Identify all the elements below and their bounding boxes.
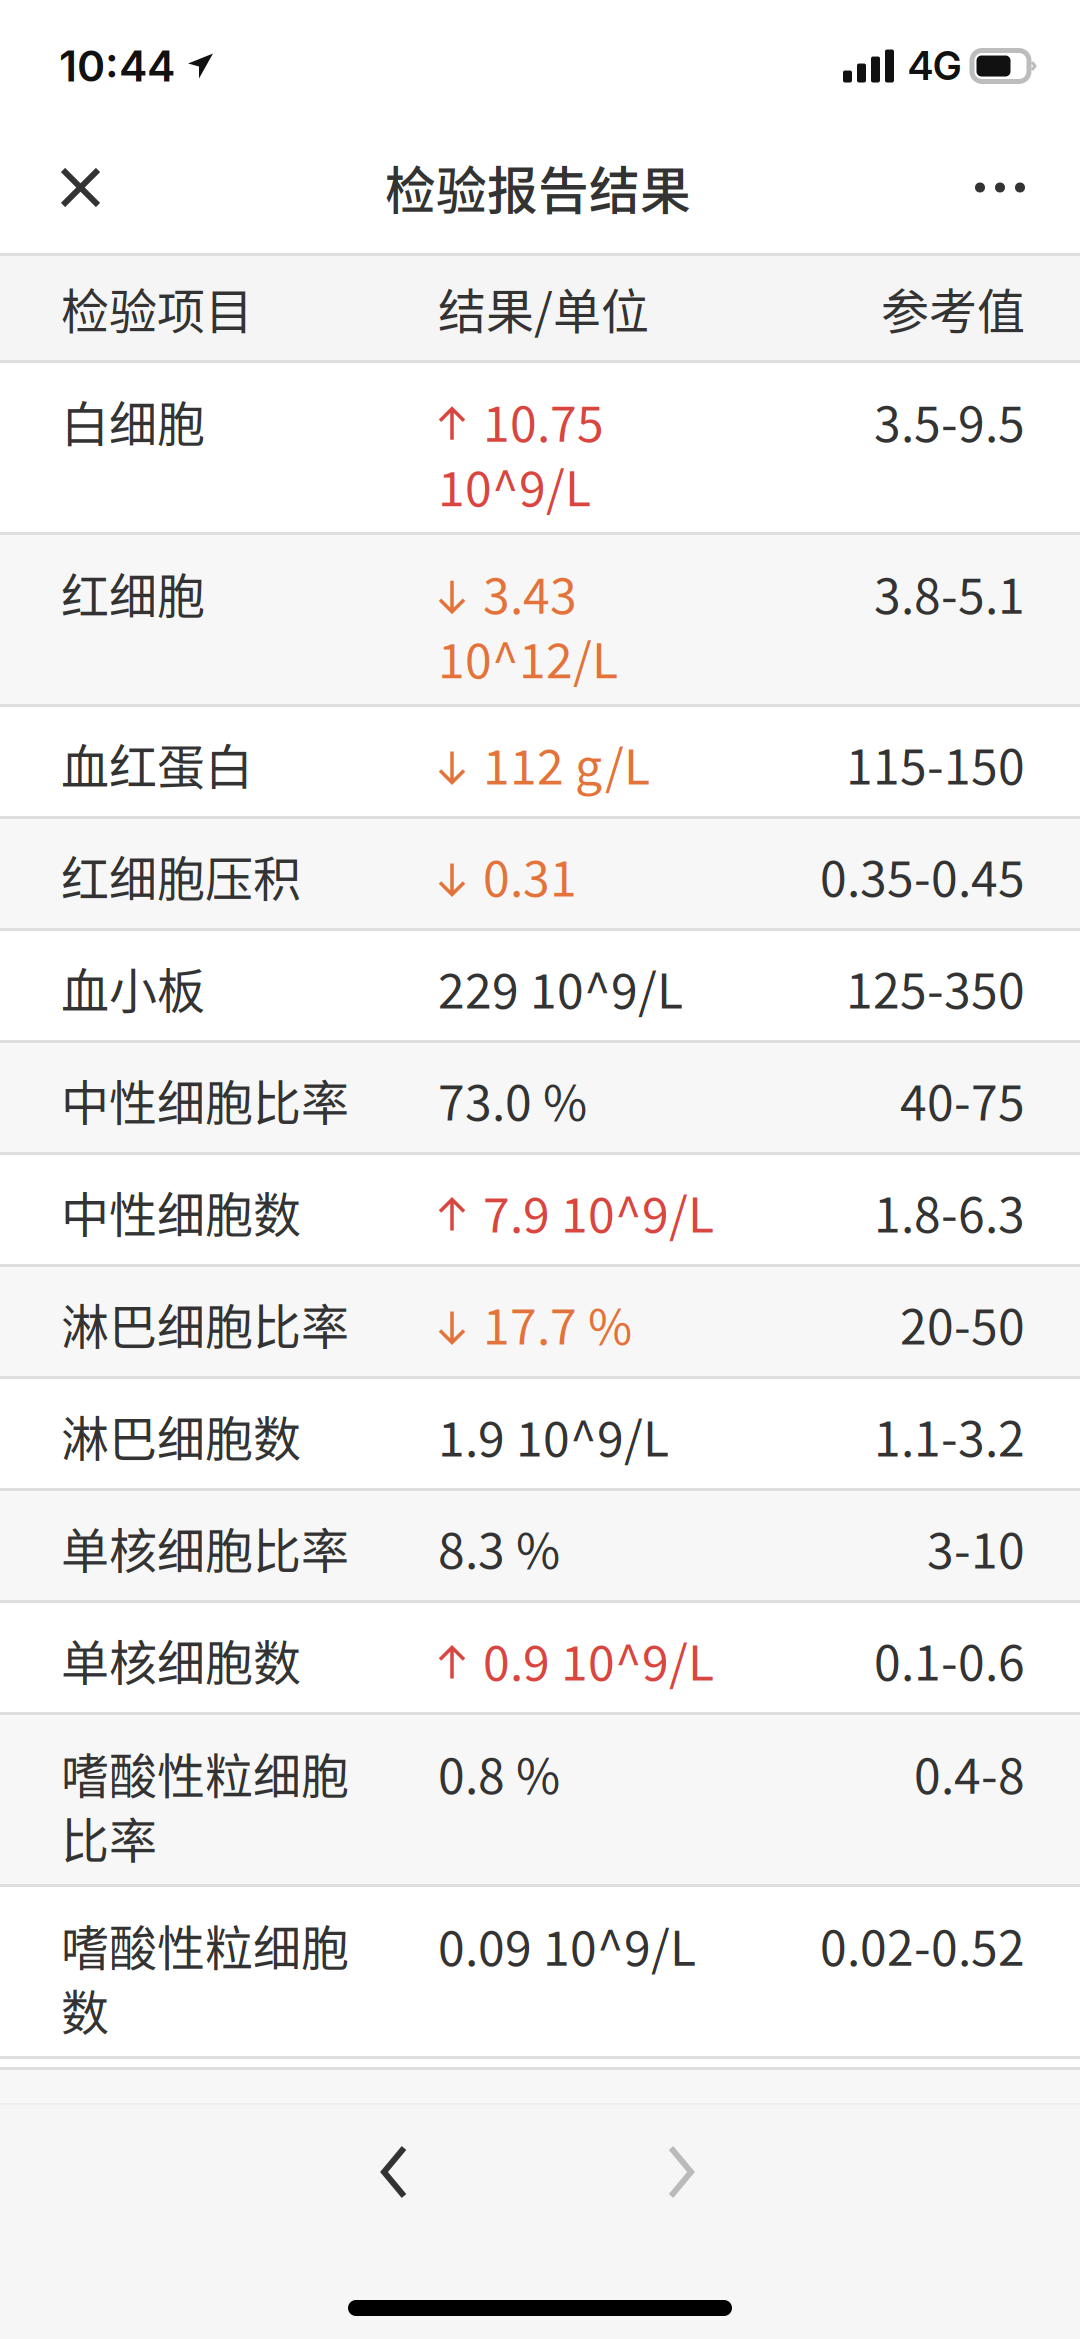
staticText: 115-150	[846, 729, 1025, 798]
staticText: 17.7 %	[483, 1289, 632, 1358]
button[interactable]: 血红蛋白	[0, 707, 1080, 819]
staticText: 3.5-9.5	[874, 386, 1025, 455]
staticText: 10^12/L	[438, 622, 618, 692]
staticText: 红细胞	[61, 558, 205, 627]
staticText: 3.8-5.1	[874, 558, 1025, 627]
staticText: 8.3 %	[438, 1513, 560, 1582]
staticText: 0.09 10^9/L	[438, 1910, 696, 1979]
staticText: 中性细胞数	[61, 1177, 301, 1246]
button[interactable]: 单核细胞比率	[0, 1491, 1080, 1603]
button[interactable]: 中性细胞比率	[0, 1043, 1080, 1155]
staticText: 0.35-0.45	[820, 841, 1025, 910]
staticText: 数	[61, 1974, 109, 2044]
staticText: 白细胞	[61, 386, 205, 455]
staticText: 0.8 %	[438, 1738, 560, 1807]
staticText: 1.8-6.3	[874, 1177, 1025, 1246]
staticText: 嗜酸性粒细胞	[61, 1738, 349, 1807]
button[interactable]: 中性细胞数	[0, 1155, 1080, 1267]
button[interactable]: 单核细胞数	[0, 1603, 1080, 1715]
button[interactable]: Previous report	[357, 2122, 431, 2222]
button[interactable]: 红细胞	[0, 535, 1080, 707]
staticText: 0.02-0.52	[820, 1910, 1025, 1979]
staticText: 嗜酸性粒细胞	[61, 1910, 349, 1979]
staticText: 4G	[908, 43, 961, 89]
button[interactable]: More options	[965, 182, 1035, 192]
staticText: 0.9 10^9/L	[483, 1625, 714, 1694]
staticText: 单核细胞比率	[61, 1513, 349, 1582]
button[interactable]: Close	[50, 167, 111, 208]
staticText: 10:44	[59, 40, 175, 92]
staticText: 单核细胞数	[61, 1625, 301, 1694]
button[interactable]: 嗜酸性粒细胞	[0, 1715, 1080, 1887]
staticText: 比率	[61, 1802, 157, 1872]
staticText: 淋巴细胞数	[61, 1401, 301, 1470]
staticText: 125-350	[846, 953, 1025, 1022]
staticText: 40-75	[900, 1065, 1025, 1134]
staticText: 红细胞压积	[61, 841, 301, 910]
button[interactable]: 嗜酸性粒细胞	[0, 1887, 1080, 2059]
staticText: 10.75	[483, 386, 604, 455]
button[interactable]: Next report	[644, 2122, 718, 2222]
button[interactable]: 红细胞压积	[0, 819, 1080, 931]
staticText: 检验报告结果	[385, 151, 691, 224]
staticText: 3-10	[927, 1513, 1025, 1582]
staticText: 1.1-3.2	[874, 1401, 1025, 1470]
button[interactable]: 血小板	[0, 931, 1080, 1043]
staticText: 3.43	[483, 558, 577, 627]
staticText: 229 10^9/L	[438, 953, 683, 1022]
button[interactable]: 淋巴细胞比率	[0, 1267, 1080, 1379]
staticText: 1.9 10^9/L	[438, 1401, 669, 1470]
staticText: 检验项目	[61, 273, 253, 343]
staticText: 淋巴细胞比率	[61, 1289, 349, 1358]
staticText: 血红蛋白	[61, 729, 253, 798]
staticText: 20-50	[900, 1289, 1025, 1358]
staticText: 0.31	[483, 841, 577, 910]
staticText: 112 g/L	[483, 729, 650, 798]
staticText: 血小板	[61, 953, 205, 1022]
button[interactable]: 淋巴细胞数	[0, 1379, 1080, 1491]
button[interactable]: 白细胞	[0, 363, 1080, 535]
staticText: 0.1-0.6	[874, 1625, 1025, 1694]
staticText: 10^9/L	[438, 450, 591, 520]
staticText: 73.0 %	[438, 1065, 587, 1134]
staticText: 结果/单位	[438, 273, 649, 343]
staticText: 7.9 10^9/L	[483, 1177, 714, 1246]
staticText: 中性细胞比率	[61, 1065, 349, 1134]
staticText: 参考值	[881, 273, 1025, 343]
staticText: 0.4-8	[914, 1738, 1025, 1807]
